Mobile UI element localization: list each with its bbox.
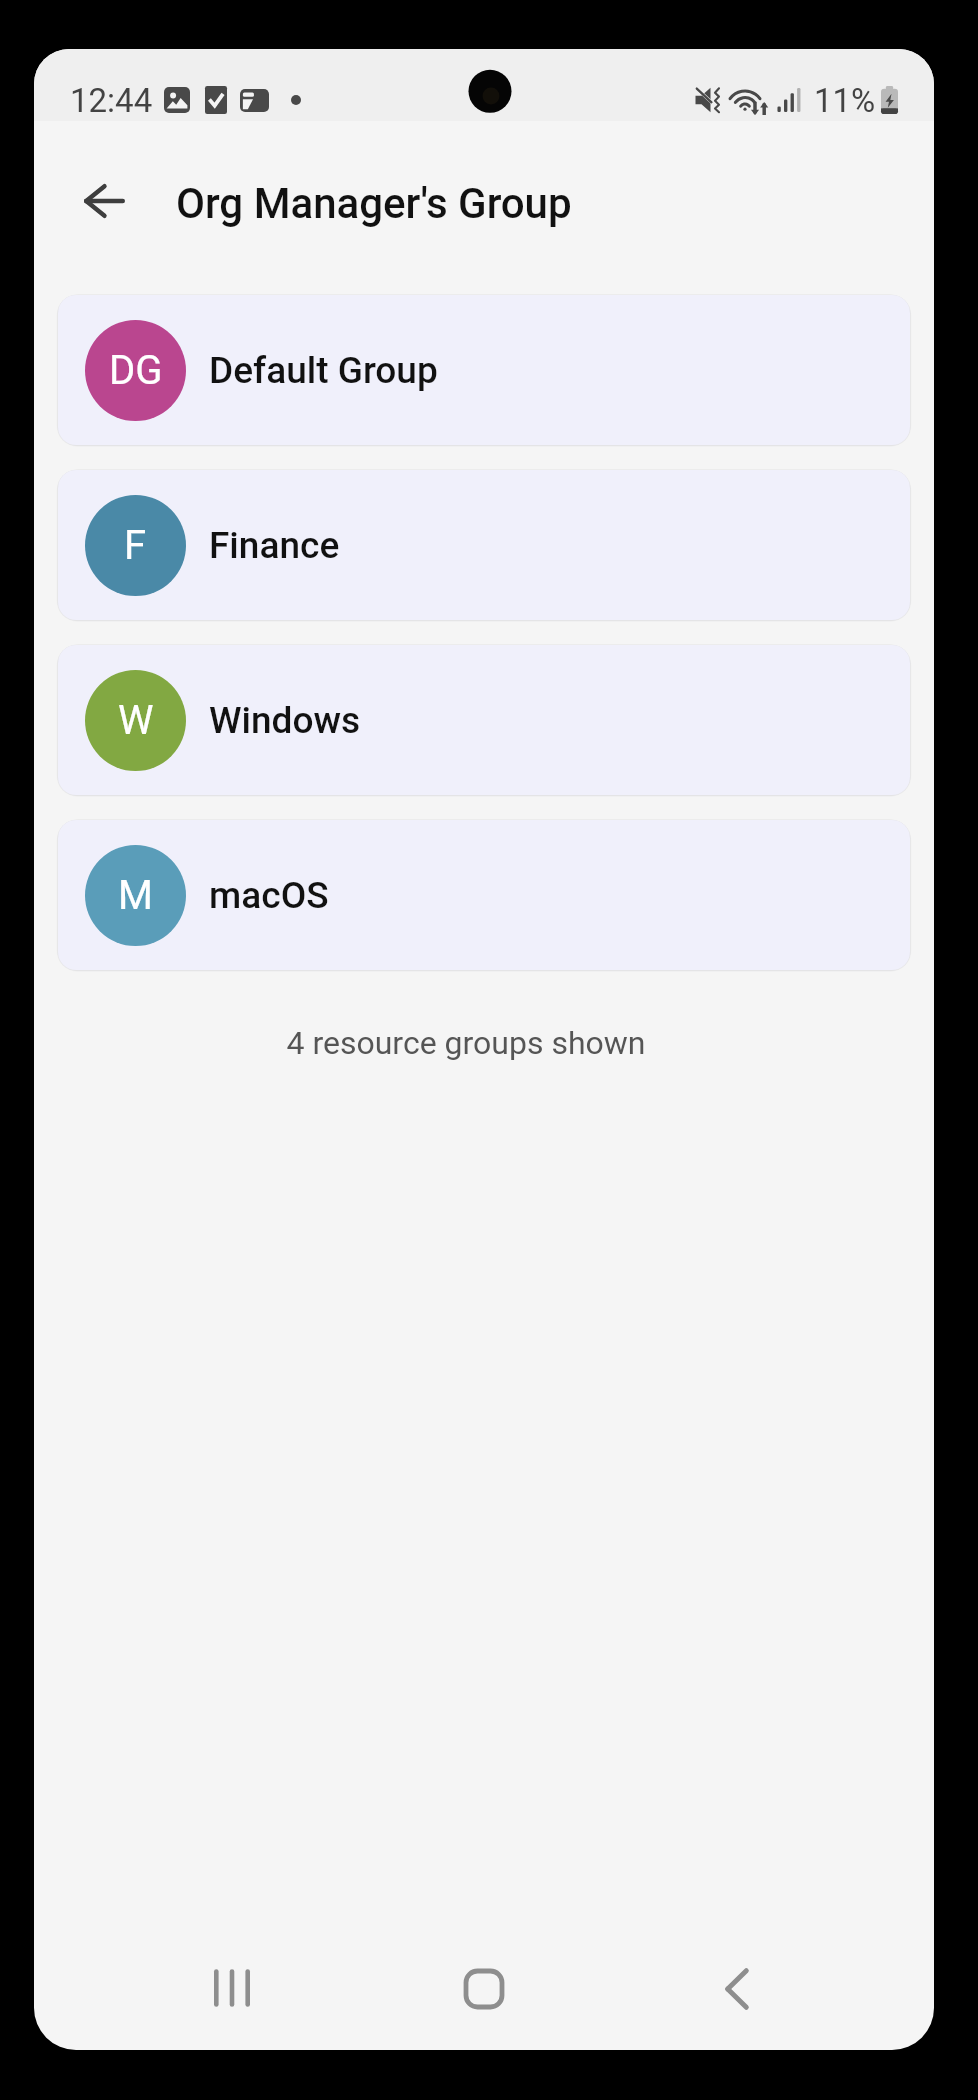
button[interactable]: Back xyxy=(84,176,152,226)
staticText: 4 resource groups shown xyxy=(34,1024,916,1062)
staticText: Org Manager's Group xyxy=(176,179,572,228)
button[interactable]: Home xyxy=(415,1932,551,2050)
button[interactable]: F xyxy=(58,470,910,620)
staticText: W xyxy=(118,697,154,744)
button[interactable]: Recents xyxy=(164,1932,300,2050)
staticText: DG xyxy=(109,347,163,394)
staticText: M xyxy=(118,872,153,919)
button[interactable]: Back xyxy=(666,1932,802,2050)
button[interactable]: DG xyxy=(58,295,910,445)
staticText: 11% xyxy=(814,81,876,120)
button[interactable]: W xyxy=(58,645,910,795)
staticText: Default Group xyxy=(209,349,438,392)
button[interactable]: M xyxy=(58,820,910,970)
staticText: Windows xyxy=(209,699,361,742)
staticText: Finance xyxy=(209,524,340,567)
staticText: F xyxy=(124,522,147,569)
staticText: 12:44 xyxy=(70,81,153,120)
staticText: macOS xyxy=(209,874,329,917)
